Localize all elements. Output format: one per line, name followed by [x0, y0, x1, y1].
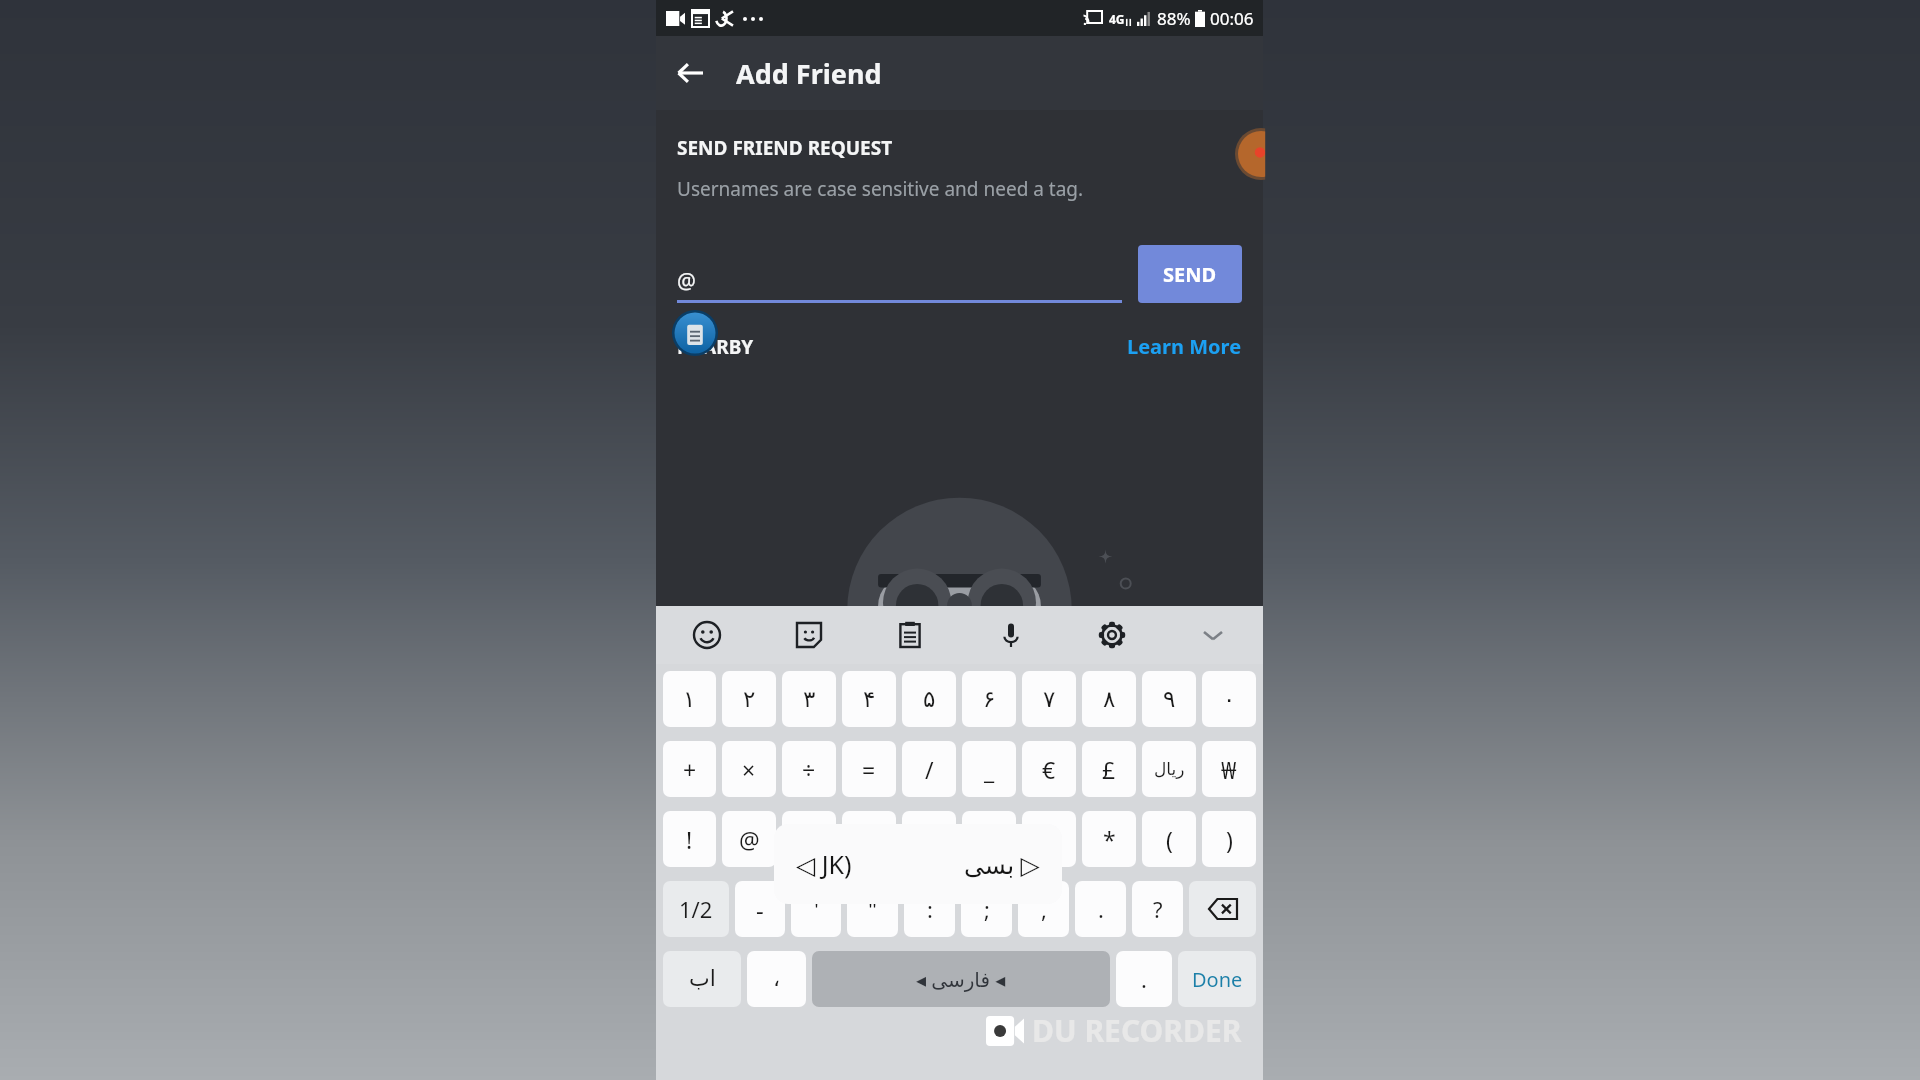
button[interactable]: ۳: [782, 671, 836, 727]
staticText: ۸: [1103, 686, 1116, 713]
staticText: ;: [984, 894, 990, 924]
staticText: ◁ JK): [796, 847, 852, 881]
staticText: ,: [1041, 894, 1047, 924]
staticText: +: [683, 754, 697, 785]
button[interactable]: :: [904, 881, 955, 937]
button[interactable]: &: [1022, 811, 1076, 867]
button[interactable]: Done: [1178, 951, 1256, 1007]
staticText: @: [739, 824, 760, 855]
staticText: ۶: [983, 686, 996, 713]
button[interactable]: @: [722, 811, 776, 867]
button[interactable]: Backspace: [1189, 881, 1256, 937]
button[interactable]: ۶: [962, 671, 1016, 727]
staticText: _: [984, 754, 995, 785]
button[interactable]: Clipboard: [672, 310, 718, 356]
staticText: 00:06: [1210, 7, 1254, 30]
button[interactable]: ،: [747, 951, 806, 1007]
button[interactable]: ?: [1132, 881, 1183, 937]
button[interactable]: ۵: [902, 671, 956, 727]
button[interactable]: +: [663, 741, 716, 797]
button[interactable]: Emoji: [656, 606, 758, 664]
staticText: بسی ▷: [964, 847, 1040, 881]
button[interactable]: Back: [664, 47, 716, 99]
button[interactable]: ۸: [1082, 671, 1136, 727]
button[interactable]: ;: [961, 881, 1012, 937]
staticText: €: [1042, 754, 1056, 785]
button[interactable]: Voice input: [960, 606, 1061, 664]
button[interactable]: *: [1082, 811, 1136, 867]
staticText: /: [925, 754, 934, 785]
button[interactable]: @: [677, 262, 1122, 303]
button[interactable]: _: [962, 741, 1016, 797]
button[interactable]: ۲: [722, 671, 776, 727]
button[interactable]: ۷: [1022, 671, 1076, 727]
button[interactable]: ۱: [663, 671, 716, 727]
button[interactable]: ۴: [842, 671, 896, 727]
staticText: ریال: [1154, 759, 1185, 779]
staticText: ۰: [1223, 686, 1236, 713]
button[interactable]: .: [1075, 881, 1126, 937]
staticText: ۲: [743, 686, 756, 713]
button[interactable]: ^: [962, 811, 1016, 867]
staticText: DU RECORDER: [1032, 1010, 1242, 1051]
staticText: Learn More: [1127, 333, 1242, 360]
staticText: =: [862, 754, 876, 785]
staticText: ×: [742, 754, 756, 785]
staticText: ÷: [802, 754, 816, 785]
button[interactable]: Learn More: [1127, 333, 1242, 360]
button[interactable]: €: [1022, 741, 1076, 797]
staticText: SEND: [1163, 261, 1217, 288]
button[interactable]: =: [842, 741, 896, 797]
button[interactable]: ×: [722, 741, 776, 797]
button[interactable]: ": [847, 881, 898, 937]
button[interactable]: ': [791, 881, 841, 937]
staticText: .: [1141, 964, 1147, 994]
staticText: ۹: [1163, 686, 1176, 713]
button[interactable]: ÷: [782, 741, 836, 797]
staticText: اب: [689, 966, 716, 992]
staticText: 4G: [1109, 11, 1125, 27]
button[interactable]: /: [902, 741, 956, 797]
staticText: ۵: [923, 686, 936, 713]
button[interactable]: (: [1142, 811, 1196, 867]
button[interactable]: !: [663, 811, 716, 867]
button[interactable]: Clipboard: [859, 606, 960, 664]
button[interactable]: ◂ فارسی ◂: [812, 951, 1110, 1007]
button[interactable]: Stickers: [758, 606, 859, 664]
staticText: -: [756, 893, 764, 926]
button[interactable]: ): [1202, 811, 1256, 867]
staticText: £: [1102, 754, 1116, 785]
button[interactable]: SEND: [1138, 245, 1242, 303]
button[interactable]: ۹: [1142, 671, 1196, 727]
staticText: ): [1226, 824, 1233, 855]
button[interactable]: Hide keyboard: [1162, 606, 1263, 664]
button[interactable]: Settings: [1061, 606, 1162, 664]
staticText: ": [868, 894, 877, 924]
button[interactable]: 1/2: [663, 881, 729, 937]
button[interactable]: ₩: [1202, 741, 1256, 797]
button[interactable]: $: [842, 811, 896, 867]
staticText: Done: [1192, 966, 1243, 993]
button[interactable]: £: [1082, 741, 1136, 797]
button[interactable]: .: [1116, 951, 1172, 1007]
button[interactable]: -: [735, 881, 785, 937]
staticText: ?: [1153, 894, 1163, 924]
staticText: 88%: [1157, 7, 1191, 30]
button[interactable]: ,: [1018, 881, 1069, 937]
staticText: ،: [773, 966, 781, 992]
staticText: ۱: [683, 686, 696, 713]
button[interactable]: ریال: [1142, 741, 1196, 797]
button[interactable]: اب: [663, 951, 741, 1007]
staticText: ۴: [863, 686, 876, 713]
button[interactable]: ◁ JK): [774, 824, 1062, 904]
button[interactable]: #: [782, 811, 836, 867]
button[interactable]: ۰: [1202, 671, 1256, 727]
staticText: ۳: [803, 686, 816, 713]
staticText: (: [1166, 824, 1173, 855]
